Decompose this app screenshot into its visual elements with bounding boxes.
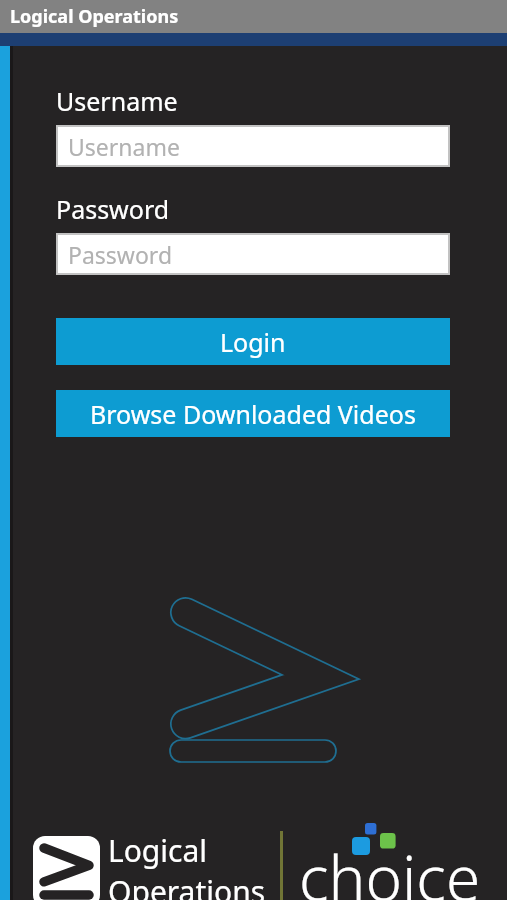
button[interactable]: Username (58, 127, 448, 165)
button[interactable]: Login (56, 318, 450, 365)
staticText: choice (299, 835, 481, 900)
staticText: Username (68, 131, 180, 162)
button[interactable]: Browse Downloaded Videos (56, 390, 450, 437)
staticText: Logical Operations (10, 4, 179, 29)
staticText: Password (68, 239, 173, 270)
staticText: Password (56, 192, 170, 226)
staticText: Username (56, 84, 178, 118)
staticText: Operations (108, 871, 266, 900)
staticText: Browse Downloaded Videos (90, 397, 416, 431)
staticText: Logical (108, 830, 208, 871)
button[interactable]: Password (58, 235, 448, 273)
staticText: Login (220, 325, 286, 359)
